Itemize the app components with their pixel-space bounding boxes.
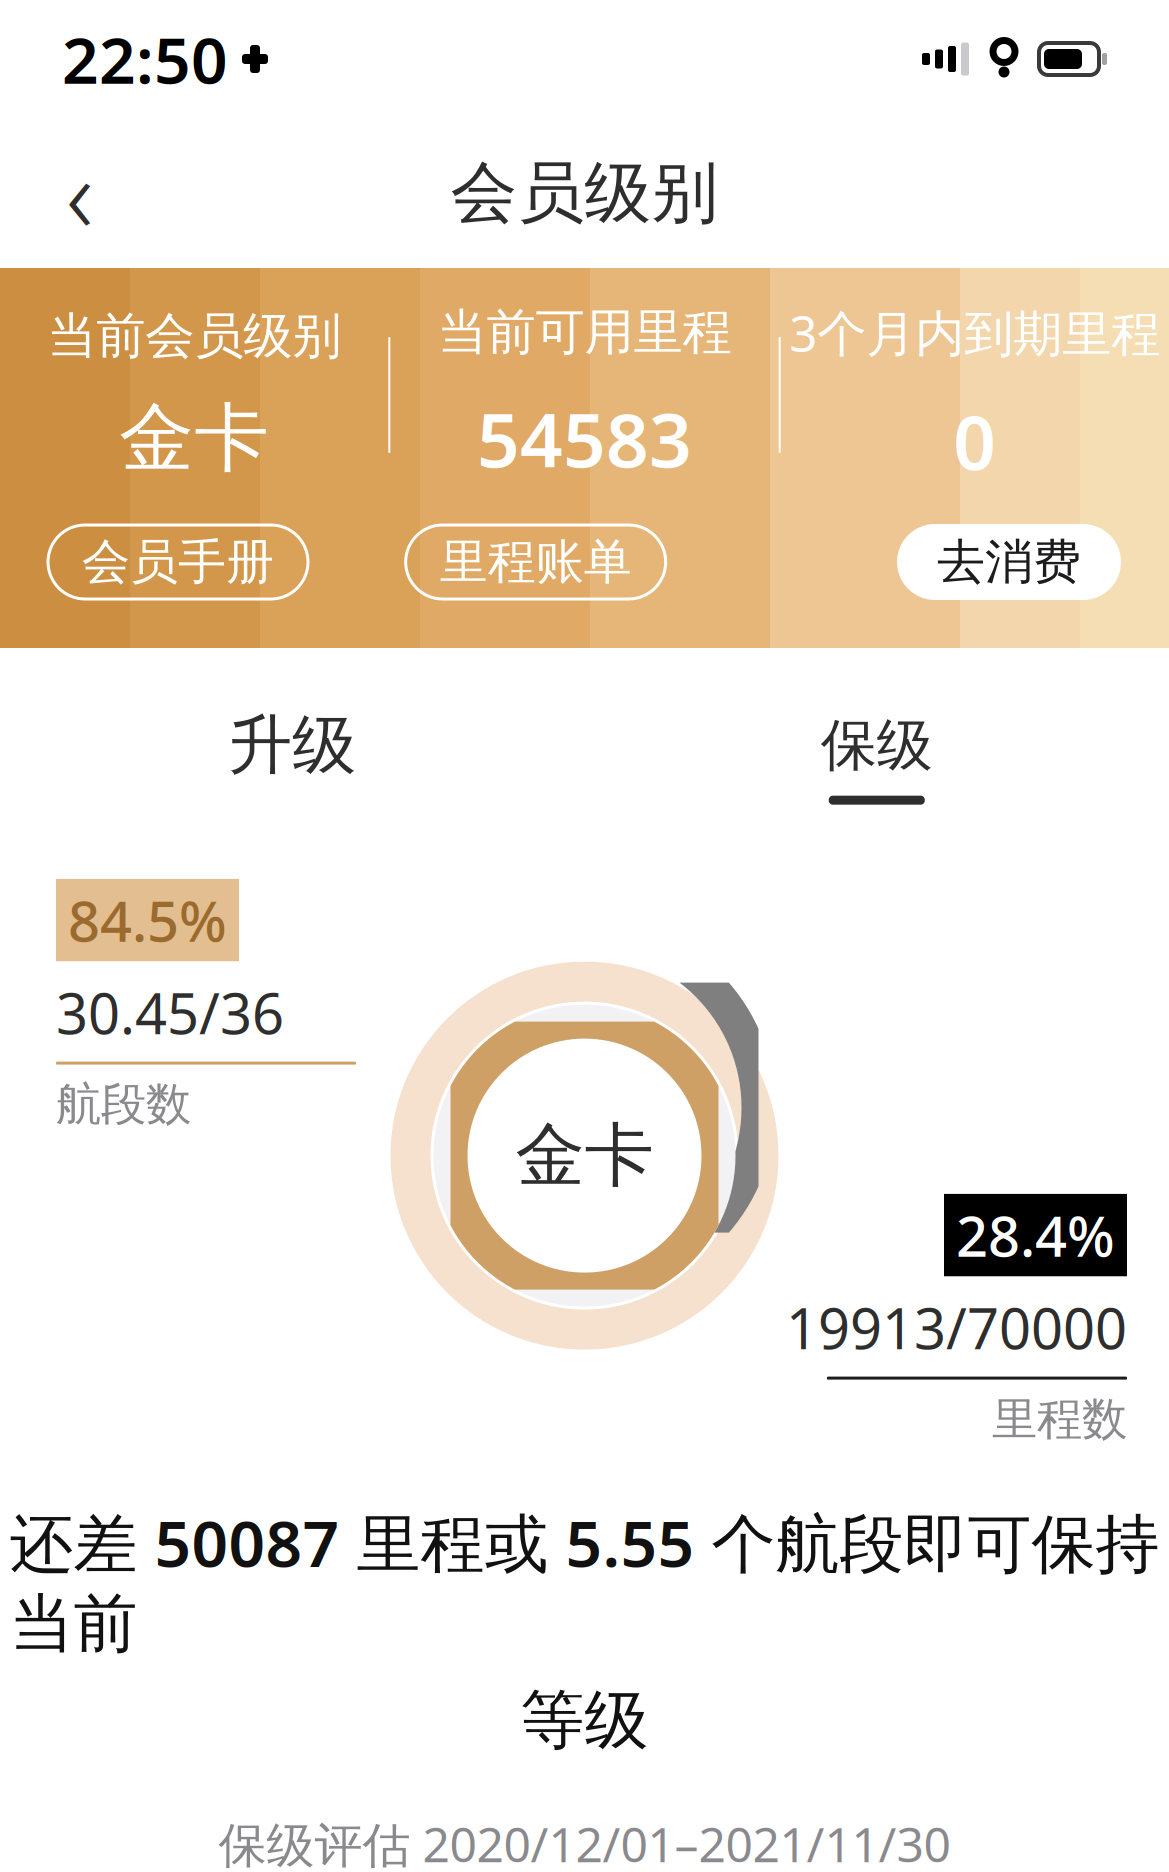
staticText: 54583 <box>477 389 692 488</box>
staticText: 84.5% <box>68 883 227 957</box>
staticText: 里程账单 <box>440 532 632 591</box>
staticText: 升级 <box>228 706 356 785</box>
button[interactable]: 里程账单 <box>406 525 666 599</box>
button[interactable]: 去消费 <box>897 524 1121 600</box>
staticText: 当前会员级别 <box>47 306 341 366</box>
staticText: 会员级别 <box>450 152 718 234</box>
staticText: 0 <box>953 391 996 490</box>
staticText: 22:50 <box>62 16 228 101</box>
staticText: 3个月内到期里程 <box>789 300 1160 365</box>
staticText: 30.45/36 <box>56 975 284 1050</box>
staticText: 保级 <box>821 711 933 780</box>
button[interactable]: 会员手册 <box>48 525 308 599</box>
staticText: 航段数 <box>56 1077 191 1132</box>
button[interactable]: 保级 <box>584 675 1169 841</box>
staticText: 当前可用里程 <box>437 302 731 363</box>
staticText: 等级 <box>520 1681 648 1760</box>
staticText: 里程数 <box>992 1392 1127 1447</box>
staticText: 保级评估 2020/12/01–2021/11/30 <box>218 1812 950 1872</box>
staticText: 会员手册 <box>82 532 274 591</box>
staticText: 还差 50087 里程或 5.55 个航段即可保持当前 <box>9 1500 1159 1663</box>
button[interactable]: Back <box>30 143 130 243</box>
staticText: 28.4% <box>956 1198 1115 1272</box>
staticText: 金卡 <box>515 1113 653 1198</box>
staticText: ‹ <box>66 124 94 262</box>
staticText: 去消费 <box>937 532 1081 591</box>
staticText: 金卡 <box>119 392 269 484</box>
button[interactable]: 升级 <box>0 670 584 846</box>
staticText: 19913/70000 <box>786 1290 1127 1365</box>
